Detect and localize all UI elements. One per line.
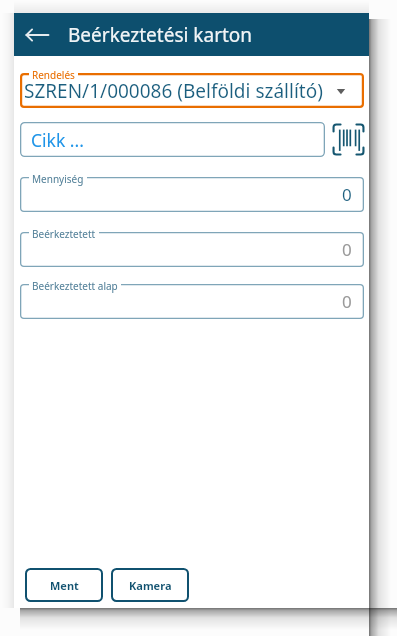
staticText: Rendelés — [32, 68, 75, 82]
button[interactable]: Kamera — [111, 568, 189, 602]
button[interactable]: 0 — [20, 177, 364, 212]
staticText: 0 — [342, 183, 352, 206]
staticText: Mennyiség — [32, 172, 84, 186]
button[interactable]: Ment — [25, 568, 103, 602]
staticText: SZREN/1/000086 (Belföldi szállító) — [24, 78, 323, 104]
button[interactable]: Scan barcode — [332, 123, 365, 156]
staticText: Ment — [50, 578, 79, 593]
staticText: Beérkeztetett — [32, 227, 96, 241]
staticText: Kamera — [129, 578, 172, 593]
staticText: Beérkeztetett alap — [32, 279, 118, 293]
staticText: Cikk ... — [31, 128, 84, 152]
button[interactable]: 0 — [20, 232, 364, 267]
button[interactable]: Back — [20, 18, 54, 52]
staticText: Beérkeztetési karton — [68, 22, 253, 48]
button[interactable]: Cikk ... — [20, 122, 325, 157]
button[interactable]: 0 — [20, 284, 364, 319]
staticText: 0 — [342, 238, 352, 261]
staticText: 0 — [342, 290, 352, 313]
button[interactable]: SZREN/1/000086 (Belföldi szállító) — [20, 73, 364, 108]
